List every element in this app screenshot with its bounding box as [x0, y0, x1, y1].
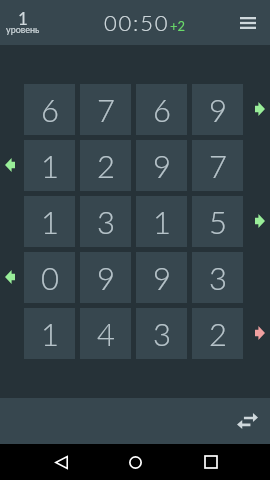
button[interactable]: Back — [29, 444, 93, 480]
staticText: 5 — [209, 203, 227, 240]
button[interactable]: 6 — [136, 84, 187, 135]
button[interactable]: 3 — [136, 308, 187, 359]
button[interactable]: 9 — [80, 252, 131, 303]
staticText: 1 — [18, 8, 28, 28]
button[interactable]: Recents — [179, 444, 243, 480]
button[interactable]: 3 — [192, 252, 243, 303]
staticText: 7 — [97, 91, 115, 128]
button[interactable]: 2 — [192, 308, 243, 359]
staticText: 1 — [41, 147, 59, 184]
staticText: 9 — [97, 259, 115, 296]
staticText: +2 — [170, 18, 186, 34]
button[interactable]: 7 — [80, 84, 131, 135]
button[interactable]: 9 — [136, 140, 187, 191]
button[interactable]: 9 — [136, 252, 187, 303]
staticText: 6 — [41, 91, 59, 128]
button[interactable]: 1 — [136, 196, 187, 247]
staticText: 1 — [41, 203, 59, 240]
button[interactable]: 1 — [0, 0, 46, 45]
staticText: 9 — [153, 147, 171, 184]
button[interactable]: Shift row left — [5, 270, 15, 284]
staticText: 9 — [209, 91, 227, 128]
button[interactable]: 9 — [192, 84, 243, 135]
button[interactable]: Home — [103, 444, 167, 480]
button[interactable]: Shift row right — [255, 102, 265, 116]
button[interactable]: 1 — [24, 196, 75, 247]
button[interactable]: 4 — [80, 308, 131, 359]
button[interactable]: 3 — [80, 196, 131, 247]
button[interactable]: 7 — [192, 140, 243, 191]
button[interactable]: 5 — [192, 196, 243, 247]
staticText: 3 — [209, 259, 227, 296]
staticText: 2 — [209, 315, 227, 352]
staticText: 00:50 — [104, 9, 170, 35]
button[interactable]: 1 — [24, 308, 75, 359]
staticText: 4 — [97, 315, 115, 352]
button[interactable]: 6 — [24, 84, 75, 135]
staticText: 1 — [41, 315, 59, 352]
staticText: 3 — [97, 203, 115, 240]
staticText: 0 — [41, 259, 59, 296]
staticText: 1 — [153, 203, 171, 240]
button[interactable]: 2 — [80, 140, 131, 191]
button[interactable]: Swap — [229, 403, 265, 439]
button[interactable]: Shift row right — [255, 326, 265, 340]
staticText: уровень — [6, 24, 40, 35]
button[interactable]: 0 — [24, 252, 75, 303]
staticText: 2 — [97, 147, 115, 184]
button[interactable]: Shift row right — [255, 214, 265, 228]
button[interactable]: Menu — [225, 0, 270, 45]
staticText: 7 — [209, 147, 227, 184]
staticText: 3 — [153, 315, 171, 352]
button[interactable]: Shift row left — [5, 158, 15, 172]
staticText: 6 — [153, 91, 171, 128]
button[interactable]: 1 — [24, 140, 75, 191]
staticText: 9 — [153, 259, 171, 296]
